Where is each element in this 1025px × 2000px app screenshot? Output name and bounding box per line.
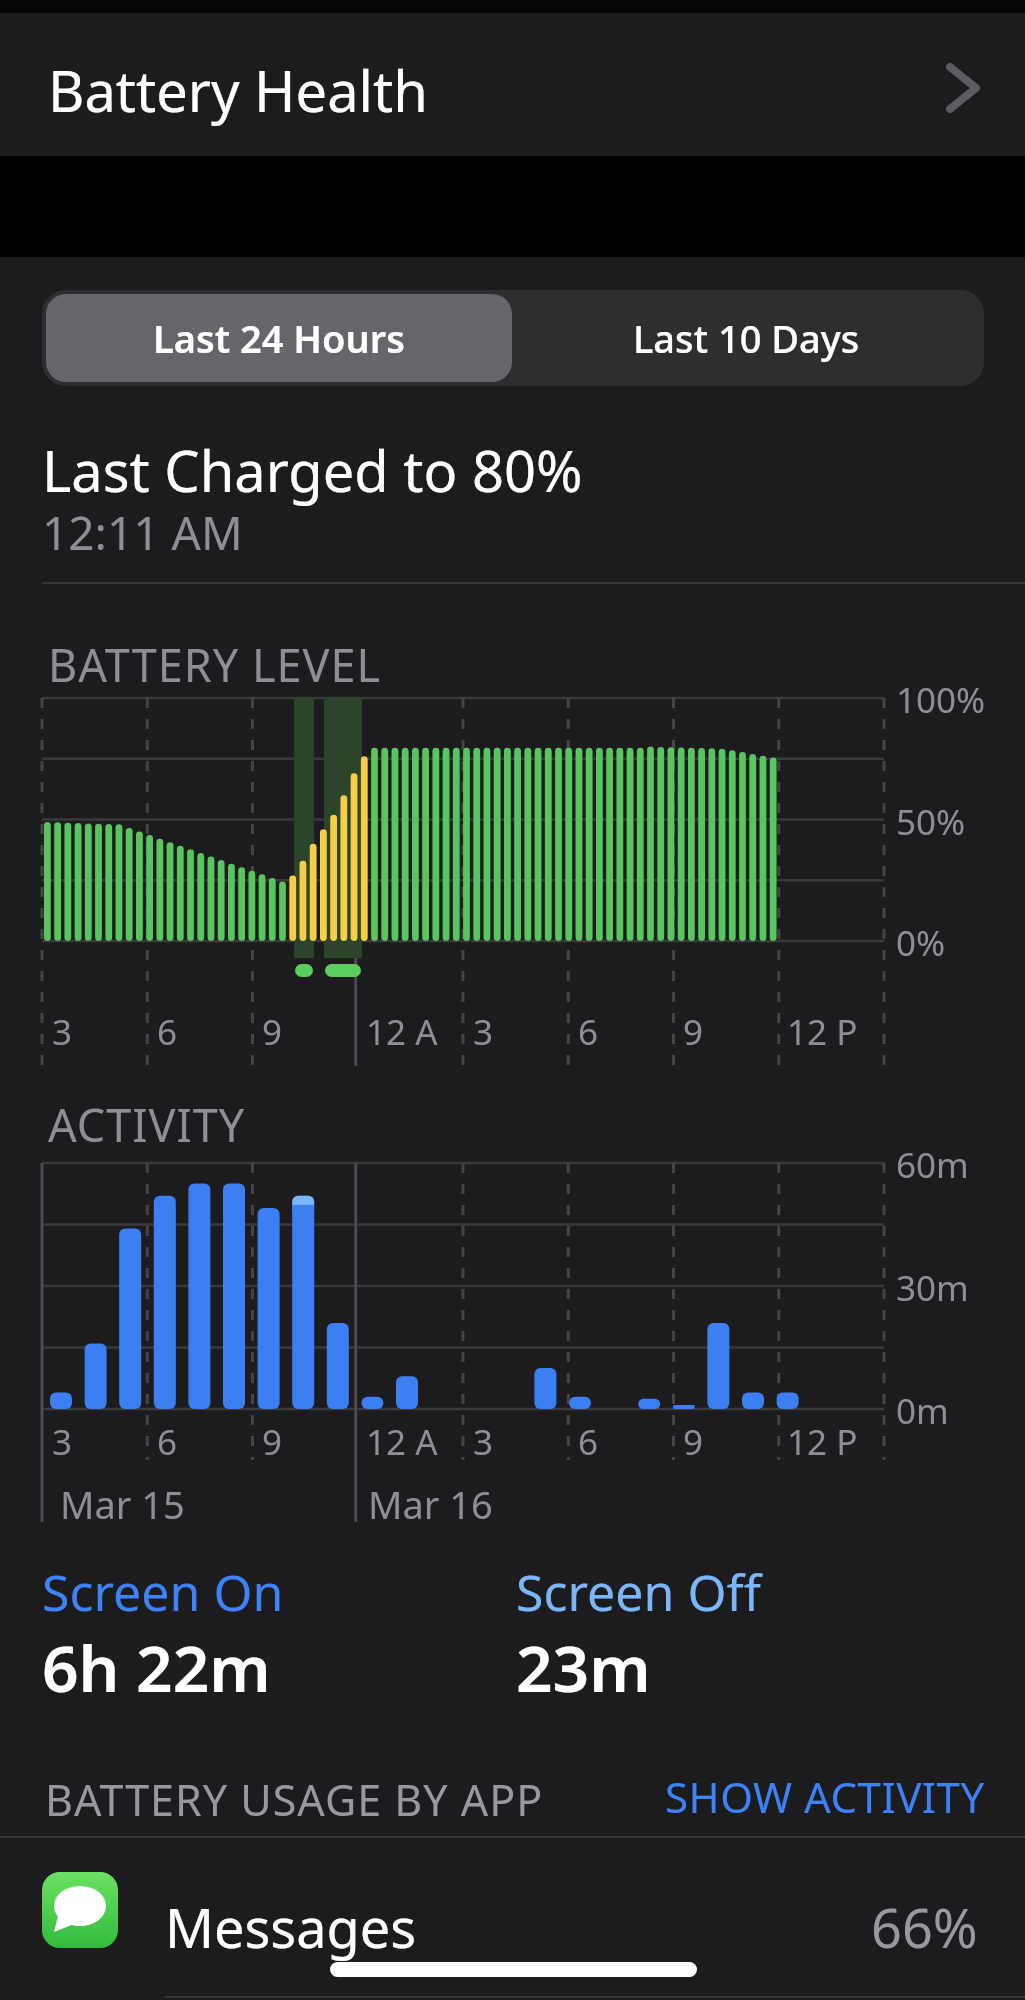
staticText: BATTERY LEVEL (48, 634, 382, 695)
staticText: 9 (262, 1418, 283, 1466)
staticText: BATTERY USAGE BY APP (45, 1770, 544, 1829)
staticText: 0m (896, 1387, 949, 1435)
staticText: Last Charged to 80% (42, 432, 583, 508)
staticText: 50% (896, 798, 966, 846)
staticText: Mar 16 (368, 1478, 493, 1530)
staticText: 6 (578, 1418, 599, 1466)
staticText: Battery Health (48, 52, 428, 128)
staticText: 12 P (787, 1418, 858, 1466)
staticText: 6 (157, 1418, 178, 1466)
button[interactable]: Last 24 Hours (46, 294, 512, 382)
button[interactable]: Last 10 Days (512, 294, 980, 382)
staticText: Last 10 Days (633, 312, 860, 364)
staticText: 12 A (366, 1418, 438, 1466)
staticText: 6 (157, 1008, 178, 1056)
staticText: 3 (473, 1418, 494, 1466)
staticText: 9 (262, 1008, 283, 1056)
staticText: 9 (683, 1008, 704, 1056)
staticText: 6 (578, 1008, 599, 1056)
staticText: ACTIVITY (48, 1094, 246, 1155)
staticText: 100% (896, 676, 986, 724)
button[interactable]: Battery Health (0, 13, 1025, 156)
staticText: Messages (165, 1890, 416, 1964)
staticText: 0% (896, 919, 946, 967)
staticText: 30m (896, 1264, 969, 1312)
staticText: Screen On (42, 1558, 284, 1626)
staticText: Mar 15 (60, 1478, 185, 1530)
button[interactable] (0, 1848, 1025, 1998)
staticText: 6h 22m (42, 1624, 271, 1711)
staticText: 12 A (366, 1008, 438, 1056)
staticText: 9 (683, 1418, 704, 1466)
staticText: 3 (473, 1008, 494, 1056)
button[interactable]: SHOW ACTIVITY (600, 1766, 985, 1826)
staticText: 60m (896, 1141, 969, 1189)
staticText: 3 (52, 1008, 73, 1056)
staticText: SHOW ACTIVITY (665, 1768, 985, 1825)
staticText: Last 24 Hours (153, 312, 406, 364)
staticText: 23m (516, 1624, 651, 1711)
staticText: 66% (871, 1890, 978, 1954)
staticText: 12:11 AM (42, 501, 243, 564)
staticText: Screen Off (516, 1558, 761, 1626)
staticText: 3 (52, 1418, 73, 1466)
staticText: 12 P (787, 1008, 858, 1056)
